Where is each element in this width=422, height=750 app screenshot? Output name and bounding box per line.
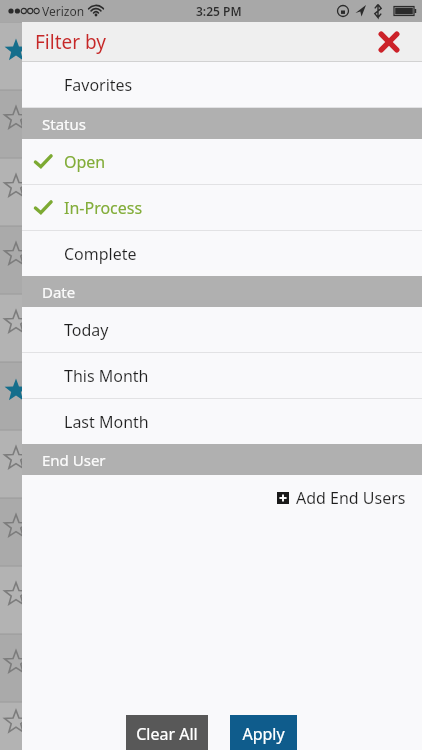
staticText: In-Process <box>64 197 143 219</box>
button[interactable]: Clear All <box>126 715 208 750</box>
staticText: End User <box>42 450 106 470</box>
button[interactable]: In-Process <box>22 185 422 230</box>
staticText: Open <box>64 151 106 173</box>
button[interactable]: Close <box>372 25 406 59</box>
staticText: Favorites <box>64 74 133 96</box>
button[interactable]: Complete <box>22 231 422 276</box>
staticText: Complete <box>64 243 137 265</box>
button[interactable]: Last Month <box>22 399 422 444</box>
button[interactable]: Open <box>22 139 422 184</box>
staticText: Filter by <box>35 29 107 55</box>
staticText: Status <box>42 114 86 134</box>
staticText: Clear All <box>136 723 198 745</box>
button[interactable]: Favorites <box>22 62 422 107</box>
staticText: Today <box>64 319 109 341</box>
button[interactable]: This Month <box>22 353 422 398</box>
button[interactable]: Add End Users <box>22 475 422 521</box>
staticText: Date <box>42 282 76 302</box>
staticText: Last Month <box>64 411 149 433</box>
staticText: This Month <box>64 365 149 387</box>
button[interactable]: Today <box>22 307 422 352</box>
staticText: 3:25 PM <box>196 3 242 19</box>
staticText: Apply <box>242 723 285 745</box>
staticText: Verizon <box>42 3 85 19</box>
staticText: Add End Users <box>296 487 406 509</box>
button[interactable]: Apply <box>230 715 297 750</box>
